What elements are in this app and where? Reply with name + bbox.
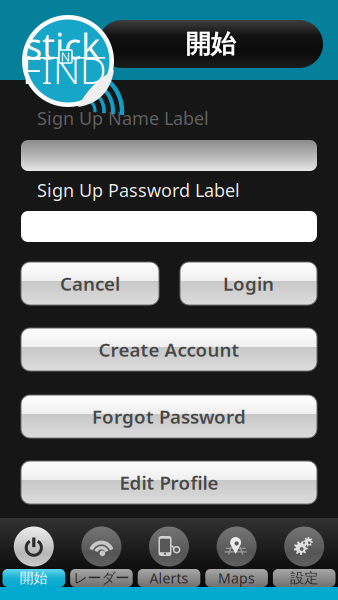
staticText: Create Account [98,337,239,362]
button[interactable]: Edit Profile [21,461,317,504]
staticText: 開始 [20,569,48,587]
button[interactable]: 開始 [0,518,68,587]
button[interactable]: 設定 [270,518,338,587]
button[interactable]: レーダー [68,518,135,587]
staticText: 設定 [290,569,318,587]
staticText: FIND [22,44,107,95]
staticText: Sign Up Name Label [37,106,209,130]
staticText: Cancel [60,271,120,296]
button[interactable]: Cancel [21,262,159,305]
staticText: Alerts [149,568,188,588]
staticText: N [60,48,70,65]
staticText: stick [25,21,100,70]
button[interactable]: Maps [203,518,270,587]
button[interactable]: Forgot Password [21,395,317,438]
button[interactable]: 開始 [98,20,323,68]
staticText: Edit Profile [119,470,218,495]
staticText: 開始 [185,28,235,59]
staticText: Sign Up Password Label [37,178,240,202]
staticText: Maps [218,568,255,588]
staticText: Forgot Password [92,404,246,429]
staticText: レーダー [73,569,129,587]
button[interactable]: Alerts [135,518,203,587]
button[interactable]: Create Account [21,328,317,371]
staticText: Login [223,271,274,296]
button[interactable]: Login [180,262,317,305]
